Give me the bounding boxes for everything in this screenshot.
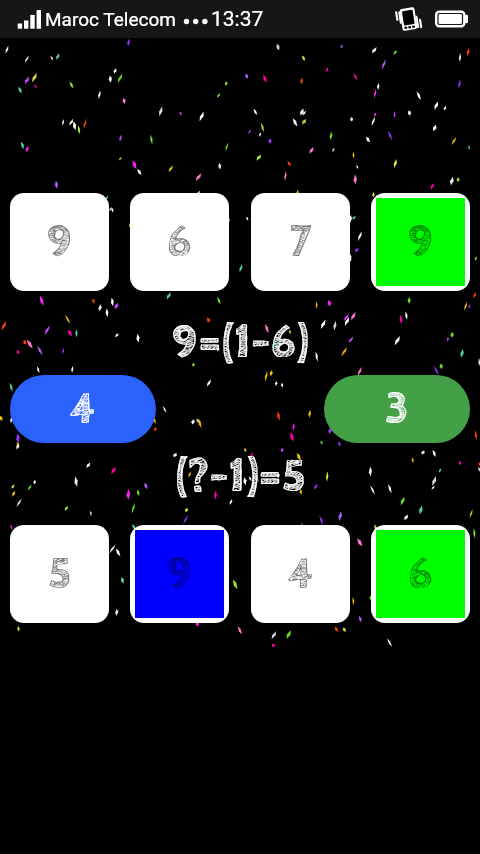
staticText: 13:37 xyxy=(211,7,264,32)
button[interactable]: 3 xyxy=(324,375,470,443)
staticText: 9=(1-6) xyxy=(172,317,308,370)
staticText: 4 xyxy=(288,549,314,601)
button[interactable]: 9 xyxy=(130,525,229,623)
staticText: Maroc Telecom xyxy=(45,8,176,30)
button[interactable]: 6 xyxy=(371,525,470,623)
other: Vibrate mode xyxy=(394,6,422,32)
staticText: 6 xyxy=(167,217,192,269)
other: Battery full xyxy=(435,8,468,30)
staticText: 6 xyxy=(408,549,433,601)
staticText: (?-1)=5 xyxy=(175,451,306,504)
staticText: 9 xyxy=(47,217,73,269)
staticText: 4 xyxy=(70,384,96,436)
staticText: 9 xyxy=(167,549,193,601)
button[interactable]: 7 xyxy=(251,193,350,291)
staticText: 9 xyxy=(408,217,434,269)
staticText: 5 xyxy=(48,549,72,601)
button[interactable]: 9 xyxy=(371,193,470,291)
button[interactable]: 5 xyxy=(10,525,109,623)
staticText: 7 xyxy=(290,217,312,269)
button[interactable]: 4 xyxy=(10,375,156,443)
button[interactable]: 6 xyxy=(130,193,229,291)
button[interactable]: 9 xyxy=(10,193,109,291)
button[interactable]: 4 xyxy=(251,525,350,623)
staticText: 3 xyxy=(385,384,409,436)
